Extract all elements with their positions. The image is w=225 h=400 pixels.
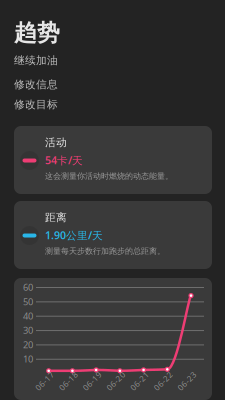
staticText: 10	[23, 353, 33, 365]
staticText: 30	[23, 324, 33, 336]
staticText: 趋势	[14, 19, 60, 47]
button[interactable]: 距离	[14, 201, 212, 269]
staticText: 这会测量你活动时燃烧的动态能量。	[45, 171, 173, 181]
staticText: 54卡/天	[45, 153, 83, 167]
staticText: 修改目标	[14, 98, 58, 111]
staticText: 06-17	[33, 376, 56, 386]
staticText: 06-18	[57, 376, 80, 386]
staticText: 继续加油	[14, 54, 58, 67]
staticText: 活动	[45, 136, 67, 149]
staticText: 06-19	[81, 376, 104, 386]
staticText: 06-20	[104, 376, 127, 386]
staticText: 修改信息	[14, 78, 58, 91]
staticText: 60	[23, 281, 33, 293]
staticText: 20	[23, 338, 33, 351]
staticText: 距离	[45, 211, 67, 224]
staticText: 40	[23, 310, 33, 322]
staticText: 50	[23, 295, 33, 308]
staticText: 1.90公里/天	[45, 228, 103, 242]
staticText: 测量每天步数行加跑步的总距离。	[45, 246, 165, 256]
staticText: 06-22	[152, 376, 175, 386]
button[interactable]: 活动	[14, 126, 212, 194]
button[interactable]: 修改目标	[0, 0, 58, 111]
button[interactable]: 修改信息	[0, 0, 58, 91]
staticText: 06-23	[175, 376, 198, 386]
staticText: 06-21	[128, 376, 151, 386]
